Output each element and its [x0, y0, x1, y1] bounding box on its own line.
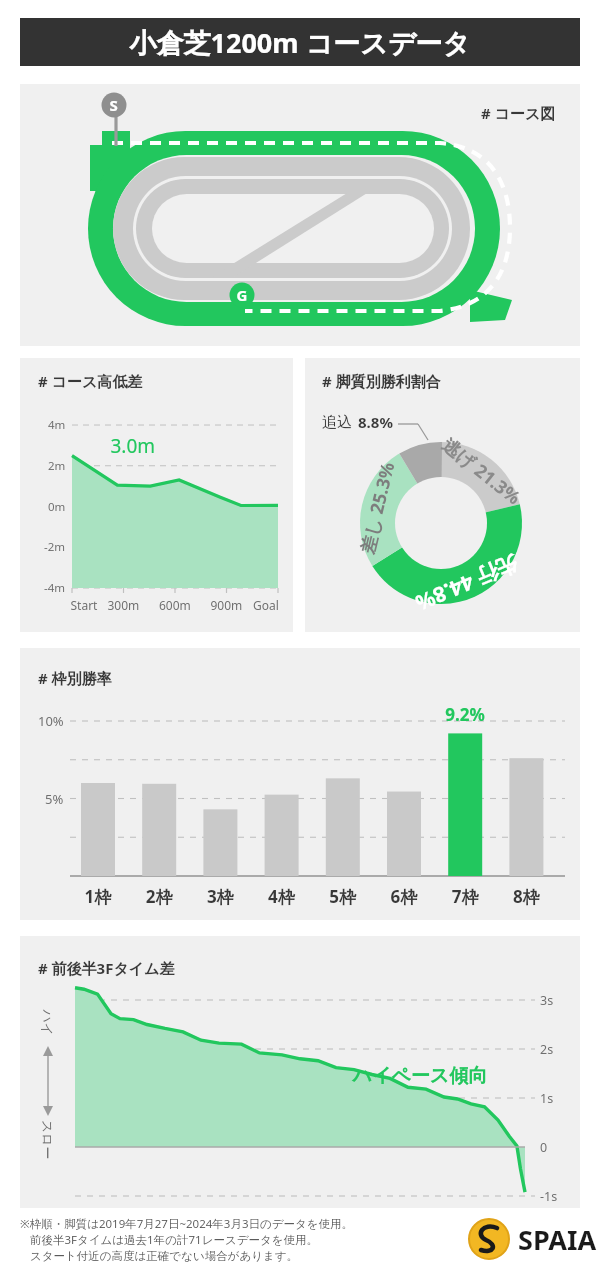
button[interactable]: 小倉芝1200m コースデータ: [20, 18, 580, 66]
button[interactable]: SPAIA: [465, 1218, 590, 1258]
